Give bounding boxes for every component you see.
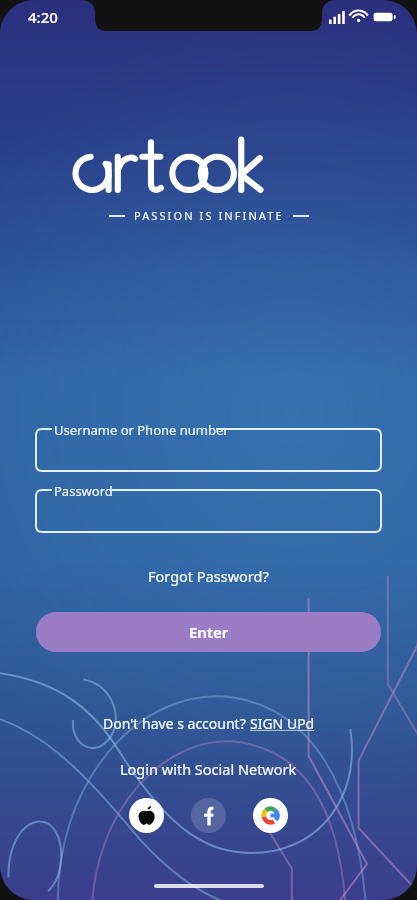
staticText: PASSION IS INFINATE xyxy=(134,208,284,223)
button[interactable]: Forgot Password? xyxy=(140,562,277,590)
button[interactable]: Sign in with Apple xyxy=(129,798,164,833)
staticText: Don't have s account? xyxy=(103,714,250,733)
button[interactable]: Enter xyxy=(36,612,381,652)
staticText: Enter xyxy=(189,622,229,642)
staticText: Username or Phone number xyxy=(54,421,229,439)
staticText: Login with Social Network xyxy=(120,759,297,779)
button[interactable]: Username or Phone number xyxy=(36,429,381,471)
staticText: SIGN UPd xyxy=(250,714,315,733)
staticText: Forgot Password? xyxy=(148,566,269,586)
staticText: Password xyxy=(54,482,113,500)
staticText: 4:20 xyxy=(28,7,58,27)
button[interactable]: Sign in with Facebook xyxy=(191,798,226,833)
button[interactable]: Sign in with Google xyxy=(253,798,288,833)
button[interactable]: SIGN UPd xyxy=(250,714,315,733)
button[interactable]: Password xyxy=(36,490,381,532)
